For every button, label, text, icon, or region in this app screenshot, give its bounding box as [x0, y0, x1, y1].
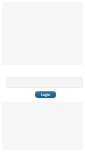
button[interactable]: Login [35, 91, 56, 98]
staticText: Login [41, 92, 50, 97]
button[interactable] [6, 77, 83, 88]
